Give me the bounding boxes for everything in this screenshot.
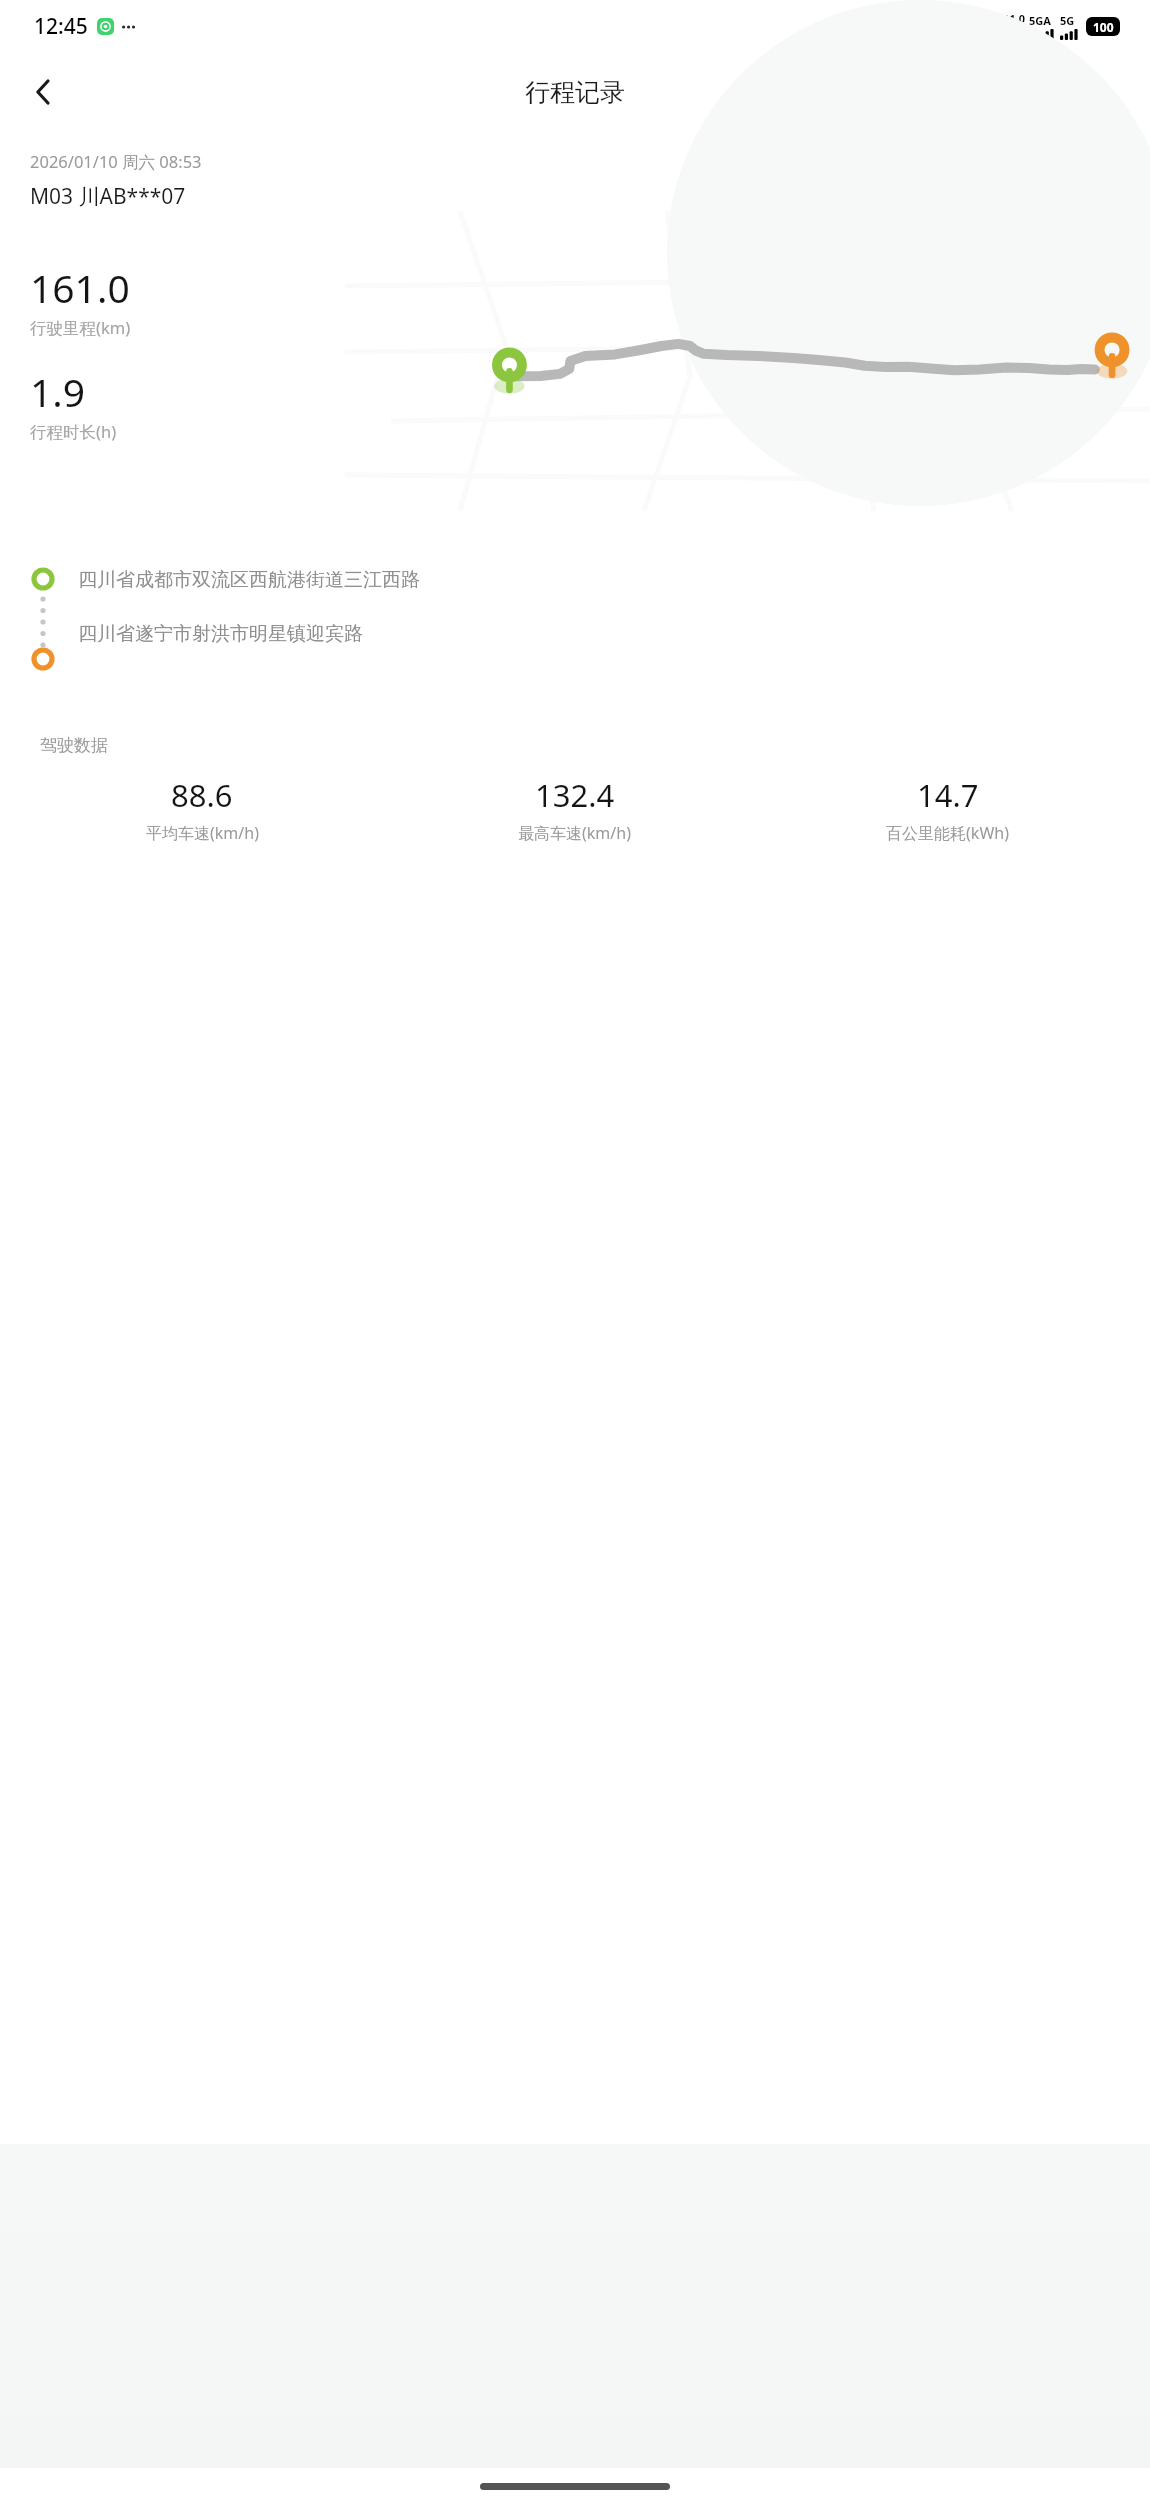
button[interactable]: 驾驶数据 bbox=[16, 713, 1134, 870]
button[interactable]: Back bbox=[16, 64, 72, 120]
staticText: M03 川AB***07 bbox=[30, 182, 186, 211]
staticText: 四川省遂宁市射洪市明星镇迎宾路 bbox=[78, 622, 363, 646]
staticText: 5G bbox=[1060, 13, 1075, 28]
staticText: 11.0 bbox=[1003, 11, 1025, 26]
staticText: 行程时长(h) bbox=[30, 420, 117, 443]
staticText: 行驶里程(km) bbox=[30, 316, 131, 339]
button[interactable]: 四川省成都市双流区西航港街道三江西路 bbox=[30, 567, 1120, 671]
staticText: 1.9 bbox=[30, 365, 86, 418]
staticText: 88.6 bbox=[171, 774, 233, 816]
staticText: 12:45 bbox=[34, 12, 88, 41]
staticText: 百公里能耗(kWh) bbox=[886, 822, 1009, 844]
staticText: 四川省成都市双流区西航港街道三江西路 bbox=[78, 568, 420, 592]
staticText: 最高车速(km/h) bbox=[518, 822, 631, 844]
staticText: 2026/01/10 周六 08:53 bbox=[30, 150, 202, 173]
staticText: 132.4 bbox=[535, 774, 615, 816]
staticText: 驾驶数据 bbox=[40, 735, 108, 756]
staticText: 100 bbox=[1093, 19, 1114, 35]
staticText: 平均车速(km/h) bbox=[146, 822, 259, 844]
staticText: 161.0 bbox=[30, 261, 130, 314]
staticText: 14.7 bbox=[917, 774, 979, 816]
staticText: 行程记录 bbox=[525, 77, 625, 108]
staticText: 5GA bbox=[1029, 13, 1051, 28]
